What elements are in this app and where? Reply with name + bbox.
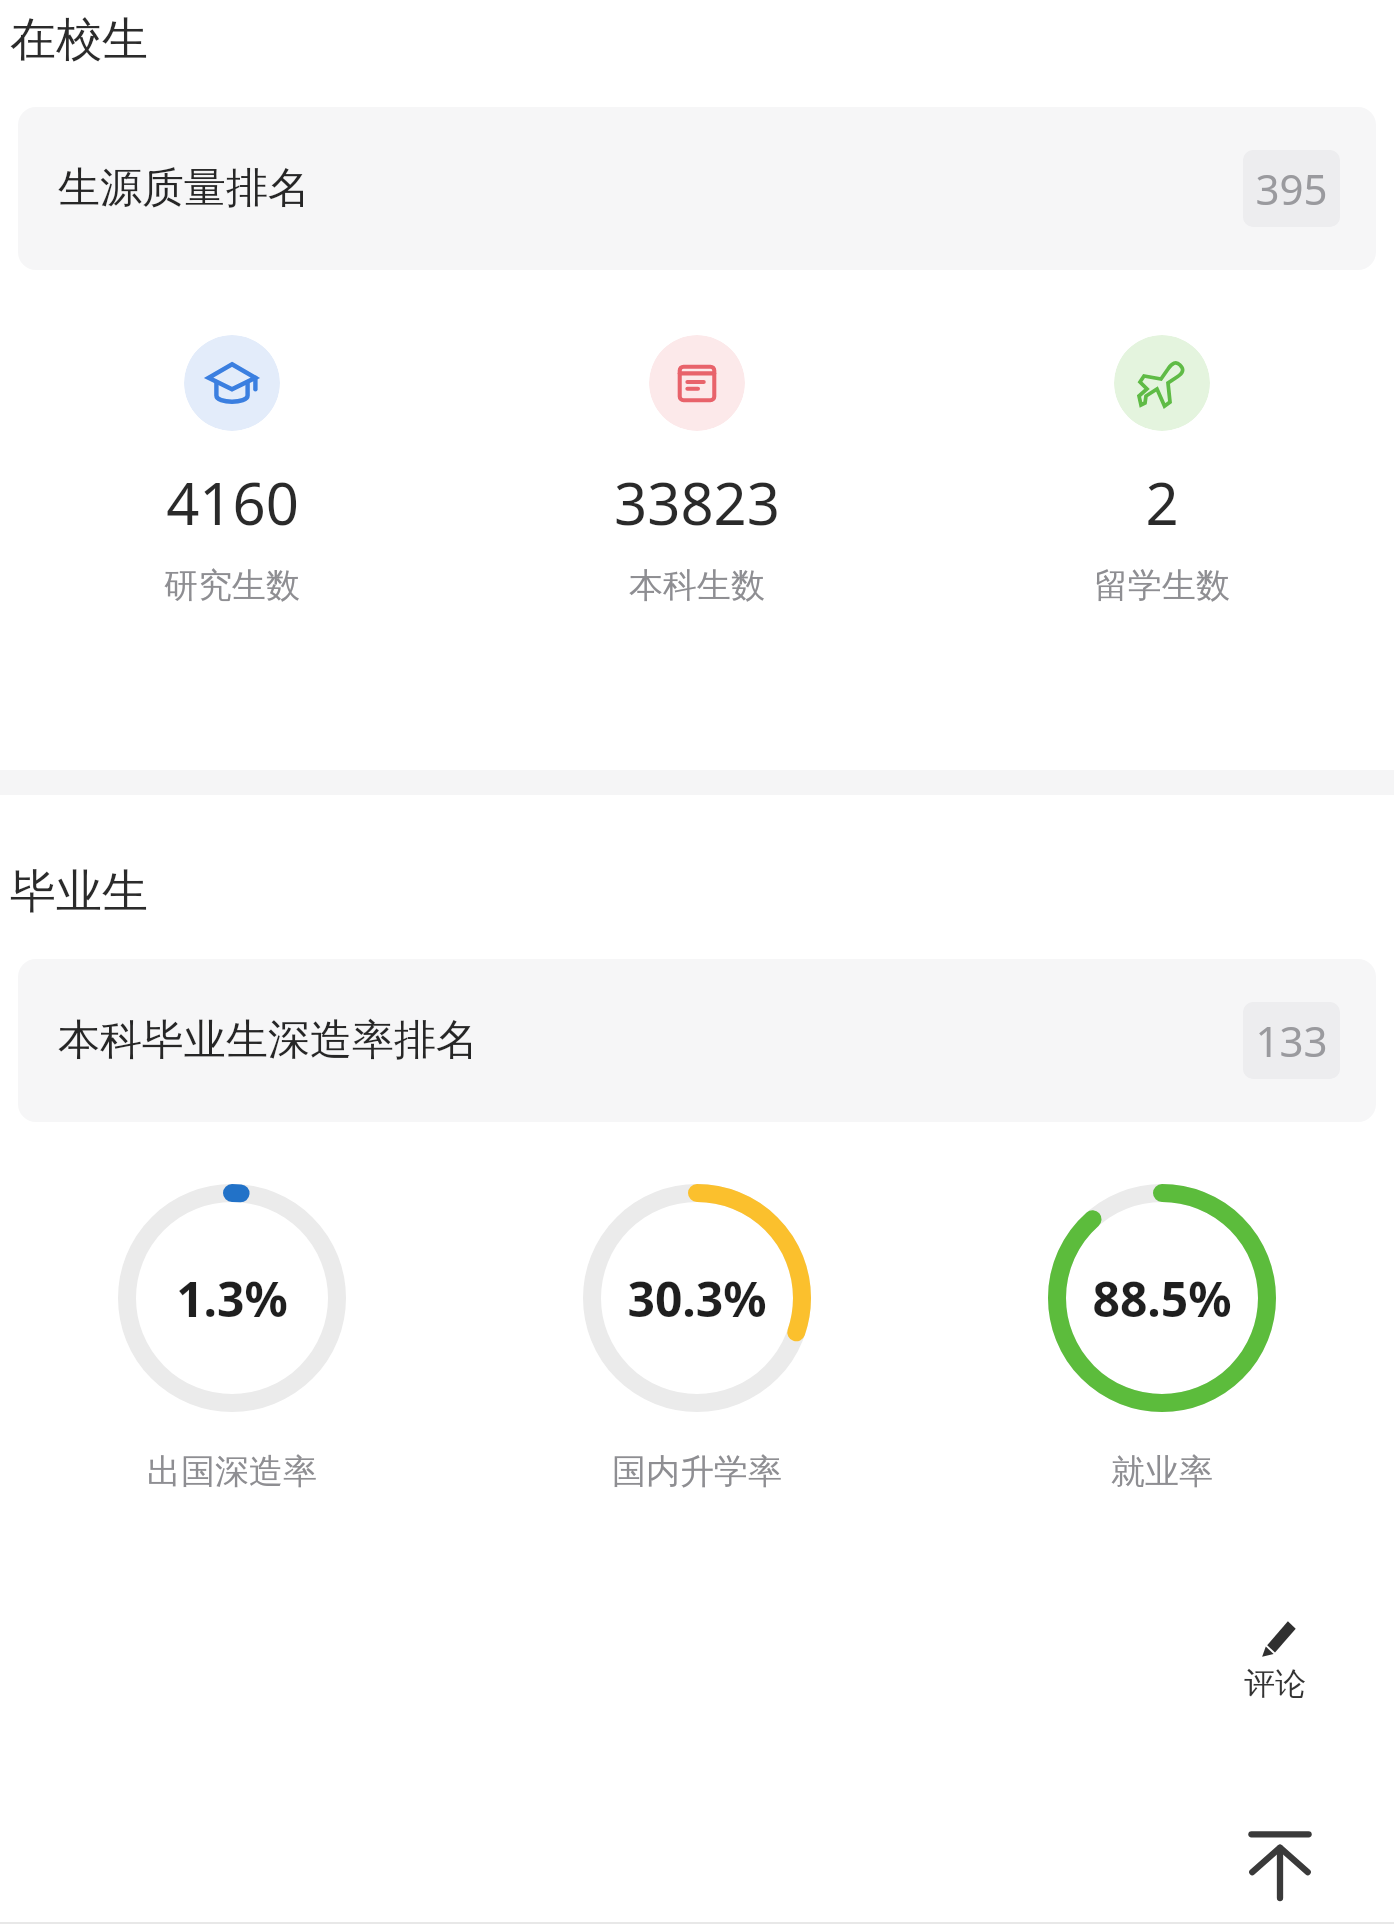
button[interactable]: 4160 bbox=[0, 335, 464, 607]
staticText: 出国深造率 bbox=[147, 1450, 317, 1493]
staticText: 4160 bbox=[166, 463, 299, 542]
staticText: 毕业生 bbox=[10, 863, 148, 921]
button[interactable]: 33823 bbox=[464, 335, 929, 607]
button[interactable]: 生源质量排名 bbox=[18, 107, 1376, 270]
button[interactable]: 评论 bbox=[1200, 1583, 1350, 1733]
staticText: 研究生数 bbox=[164, 564, 300, 607]
button[interactable]: 本科毕业生深造率排名 bbox=[18, 959, 1376, 1122]
staticText: 评论 bbox=[1244, 1664, 1306, 1703]
button[interactable]: 回到顶部 bbox=[1202, 1784, 1358, 1924]
button[interactable]: 88.5% bbox=[929, 1184, 1394, 1493]
staticText: 本科生数 bbox=[629, 564, 765, 607]
staticText: 留学生数 bbox=[1094, 564, 1230, 607]
staticText: 88.5% bbox=[1092, 1266, 1232, 1331]
staticText: 2 bbox=[1145, 463, 1179, 542]
staticText: 国内升学率 bbox=[612, 1450, 782, 1493]
button[interactable]: 2 bbox=[929, 335, 1394, 607]
staticText: 生源质量排名 bbox=[58, 162, 310, 215]
button[interactable]: 30.3% bbox=[464, 1184, 929, 1493]
staticText: 30.3% bbox=[627, 1266, 767, 1331]
staticText: 133 bbox=[1255, 1012, 1328, 1069]
staticText: 就业率 bbox=[1111, 1450, 1213, 1493]
staticText: 在校生 bbox=[10, 11, 148, 69]
staticText: 33823 bbox=[614, 463, 780, 542]
button[interactable]: 1.3% bbox=[0, 1184, 464, 1493]
staticText: 395 bbox=[1255, 160, 1328, 217]
staticText: 1.3% bbox=[176, 1266, 288, 1331]
staticText: 本科毕业生深造率排名 bbox=[58, 1014, 478, 1067]
